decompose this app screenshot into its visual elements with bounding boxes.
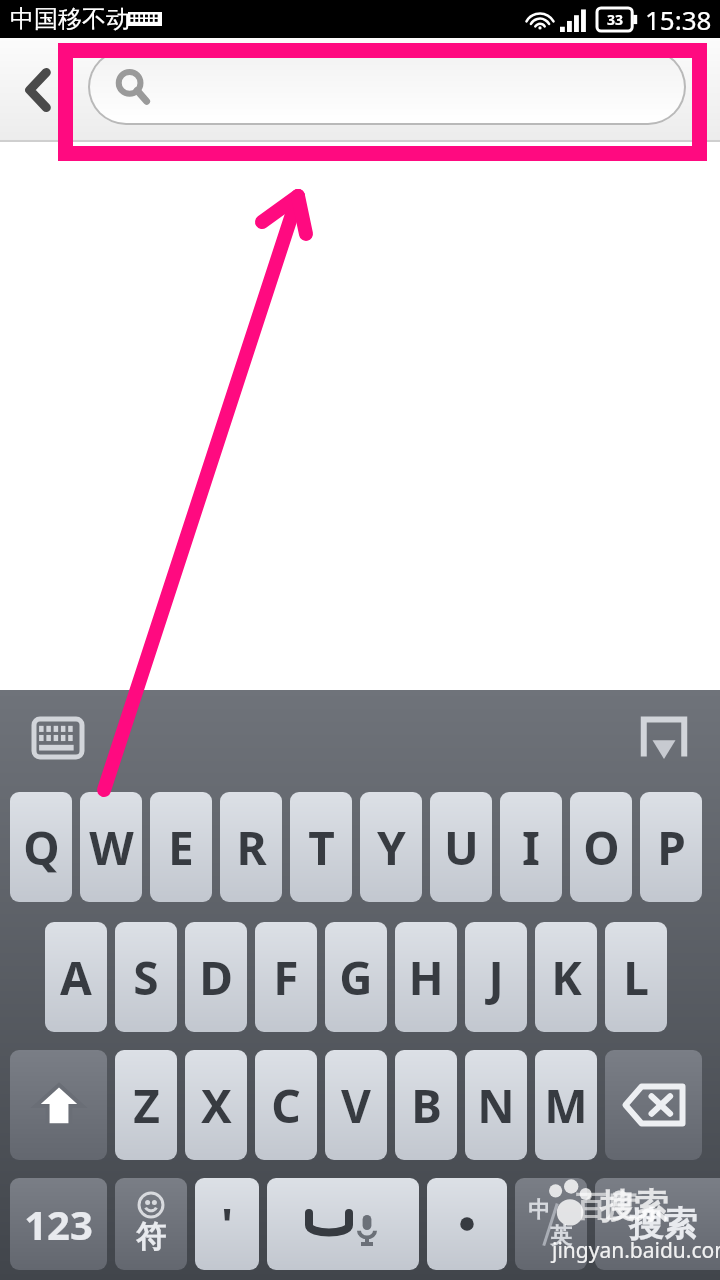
button[interactable]: X bbox=[185, 1050, 247, 1160]
button[interactable]: N bbox=[465, 1050, 527, 1160]
button[interactable]: O bbox=[570, 792, 632, 902]
staticText: X bbox=[201, 1074, 232, 1137]
staticText: N bbox=[477, 1074, 515, 1137]
staticText: 123 bbox=[24, 1197, 93, 1251]
staticText: Y bbox=[377, 816, 406, 879]
button[interactable]: Shift bbox=[10, 1050, 107, 1160]
staticText: 33 bbox=[607, 10, 624, 29]
staticText: T bbox=[308, 816, 335, 879]
staticText: V bbox=[341, 1074, 371, 1137]
button[interactable]: 123 bbox=[10, 1178, 107, 1270]
staticText: H bbox=[408, 946, 444, 1009]
staticText: 搜索 bbox=[629, 1203, 697, 1246]
staticText: 英 bbox=[550, 1222, 572, 1250]
button[interactable]: L bbox=[605, 922, 667, 1032]
button[interactable]: C bbox=[255, 1050, 317, 1160]
button[interactable]: W bbox=[80, 792, 142, 902]
button[interactable]: U bbox=[430, 792, 492, 902]
button[interactable]: I bbox=[500, 792, 562, 902]
button[interactable]: G bbox=[325, 922, 387, 1032]
button[interactable]: A bbox=[45, 922, 107, 1032]
staticText: G bbox=[339, 946, 373, 1009]
staticText: O bbox=[583, 816, 620, 879]
button[interactable]: 搜索 bbox=[595, 1178, 720, 1270]
staticText: Z bbox=[133, 1074, 160, 1137]
staticText: S bbox=[133, 946, 159, 1009]
staticText: P bbox=[657, 816, 686, 879]
button[interactable]: D bbox=[185, 922, 247, 1032]
staticText: W bbox=[89, 816, 134, 879]
button[interactable] bbox=[90, 51, 684, 123]
button[interactable]: S bbox=[115, 922, 177, 1032]
staticText: K bbox=[551, 946, 582, 1009]
staticText: B bbox=[411, 1074, 442, 1137]
button[interactable]: Hide keyboard bbox=[630, 704, 698, 772]
staticText: 15:38 bbox=[645, 2, 712, 37]
staticText: 中 bbox=[528, 1196, 550, 1224]
staticText: ' bbox=[221, 1194, 233, 1254]
button[interactable]: R bbox=[220, 792, 282, 902]
button[interactable]: Z bbox=[115, 1050, 177, 1160]
staticText: Q bbox=[23, 816, 60, 879]
button[interactable]: Q bbox=[10, 792, 72, 902]
button[interactable]: H bbox=[395, 922, 457, 1032]
staticText: D bbox=[199, 946, 233, 1009]
staticText: M bbox=[544, 1074, 588, 1137]
button[interactable]: Period bbox=[427, 1178, 507, 1270]
staticText: jingyan.baidu.com bbox=[552, 1236, 720, 1265]
button[interactable]: Back bbox=[0, 38, 76, 142]
staticText: A bbox=[60, 946, 92, 1009]
staticText: 符 bbox=[136, 1218, 166, 1256]
staticText: R bbox=[236, 816, 267, 879]
button[interactable]: F bbox=[255, 922, 317, 1032]
staticText: I bbox=[522, 816, 540, 879]
staticText: E bbox=[168, 816, 194, 879]
button[interactable]: Symbols bbox=[115, 1178, 187, 1270]
button[interactable]: J bbox=[465, 922, 527, 1032]
button[interactable]: Delete bbox=[605, 1050, 702, 1160]
staticText: L bbox=[623, 946, 649, 1009]
staticText: 百度 bbox=[576, 1188, 636, 1226]
button[interactable]: K bbox=[535, 922, 597, 1032]
button[interactable]: Y bbox=[360, 792, 422, 902]
staticText: 中国移不动 bbox=[10, 4, 130, 34]
button[interactable]: Space bbox=[267, 1178, 419, 1270]
button[interactable]: P bbox=[640, 792, 702, 902]
button[interactable]: Switch keyboard bbox=[24, 706, 92, 770]
button[interactable]: Chinese English toggle bbox=[515, 1178, 587, 1270]
button[interactable]: E bbox=[150, 792, 212, 902]
staticText: C bbox=[271, 1074, 301, 1137]
button[interactable]: V bbox=[325, 1050, 387, 1160]
staticText: J bbox=[488, 946, 504, 1009]
button[interactable]: ' bbox=[195, 1178, 259, 1270]
staticText: 搜索 bbox=[600, 1185, 668, 1228]
button[interactable]: M bbox=[535, 1050, 597, 1160]
button[interactable]: T bbox=[290, 792, 352, 902]
staticText: U bbox=[444, 816, 479, 879]
button[interactable]: B bbox=[395, 1050, 457, 1160]
staticText: F bbox=[273, 946, 299, 1009]
